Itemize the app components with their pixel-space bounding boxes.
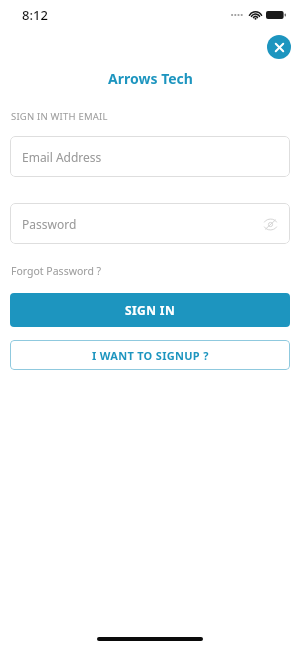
staticText: Email Address — [22, 149, 102, 165]
staticText: Password — [22, 216, 77, 232]
button[interactable]: SIGN IN — [10, 293, 290, 327]
button[interactable]: Show password — [258, 212, 282, 236]
staticText: SIGN IN — [125, 302, 176, 318]
staticText: 8:12 — [22, 6, 48, 24]
staticText: Forgot Password ? — [11, 264, 102, 278]
staticText: I WANT TO SIGNUP ? — [92, 348, 209, 363]
staticText: Arrows Tech — [108, 69, 193, 88]
staticText: SIGN IN WITH EMAIL — [11, 110, 108, 123]
button[interactable]: I WANT TO SIGNUP ? — [10, 340, 290, 370]
button[interactable]: Email Address — [10, 136, 290, 177]
button[interactable]: Password — [10, 203, 290, 244]
button[interactable]: Close — [267, 35, 291, 59]
button[interactable]: Forgot Password ? — [11, 264, 102, 278]
